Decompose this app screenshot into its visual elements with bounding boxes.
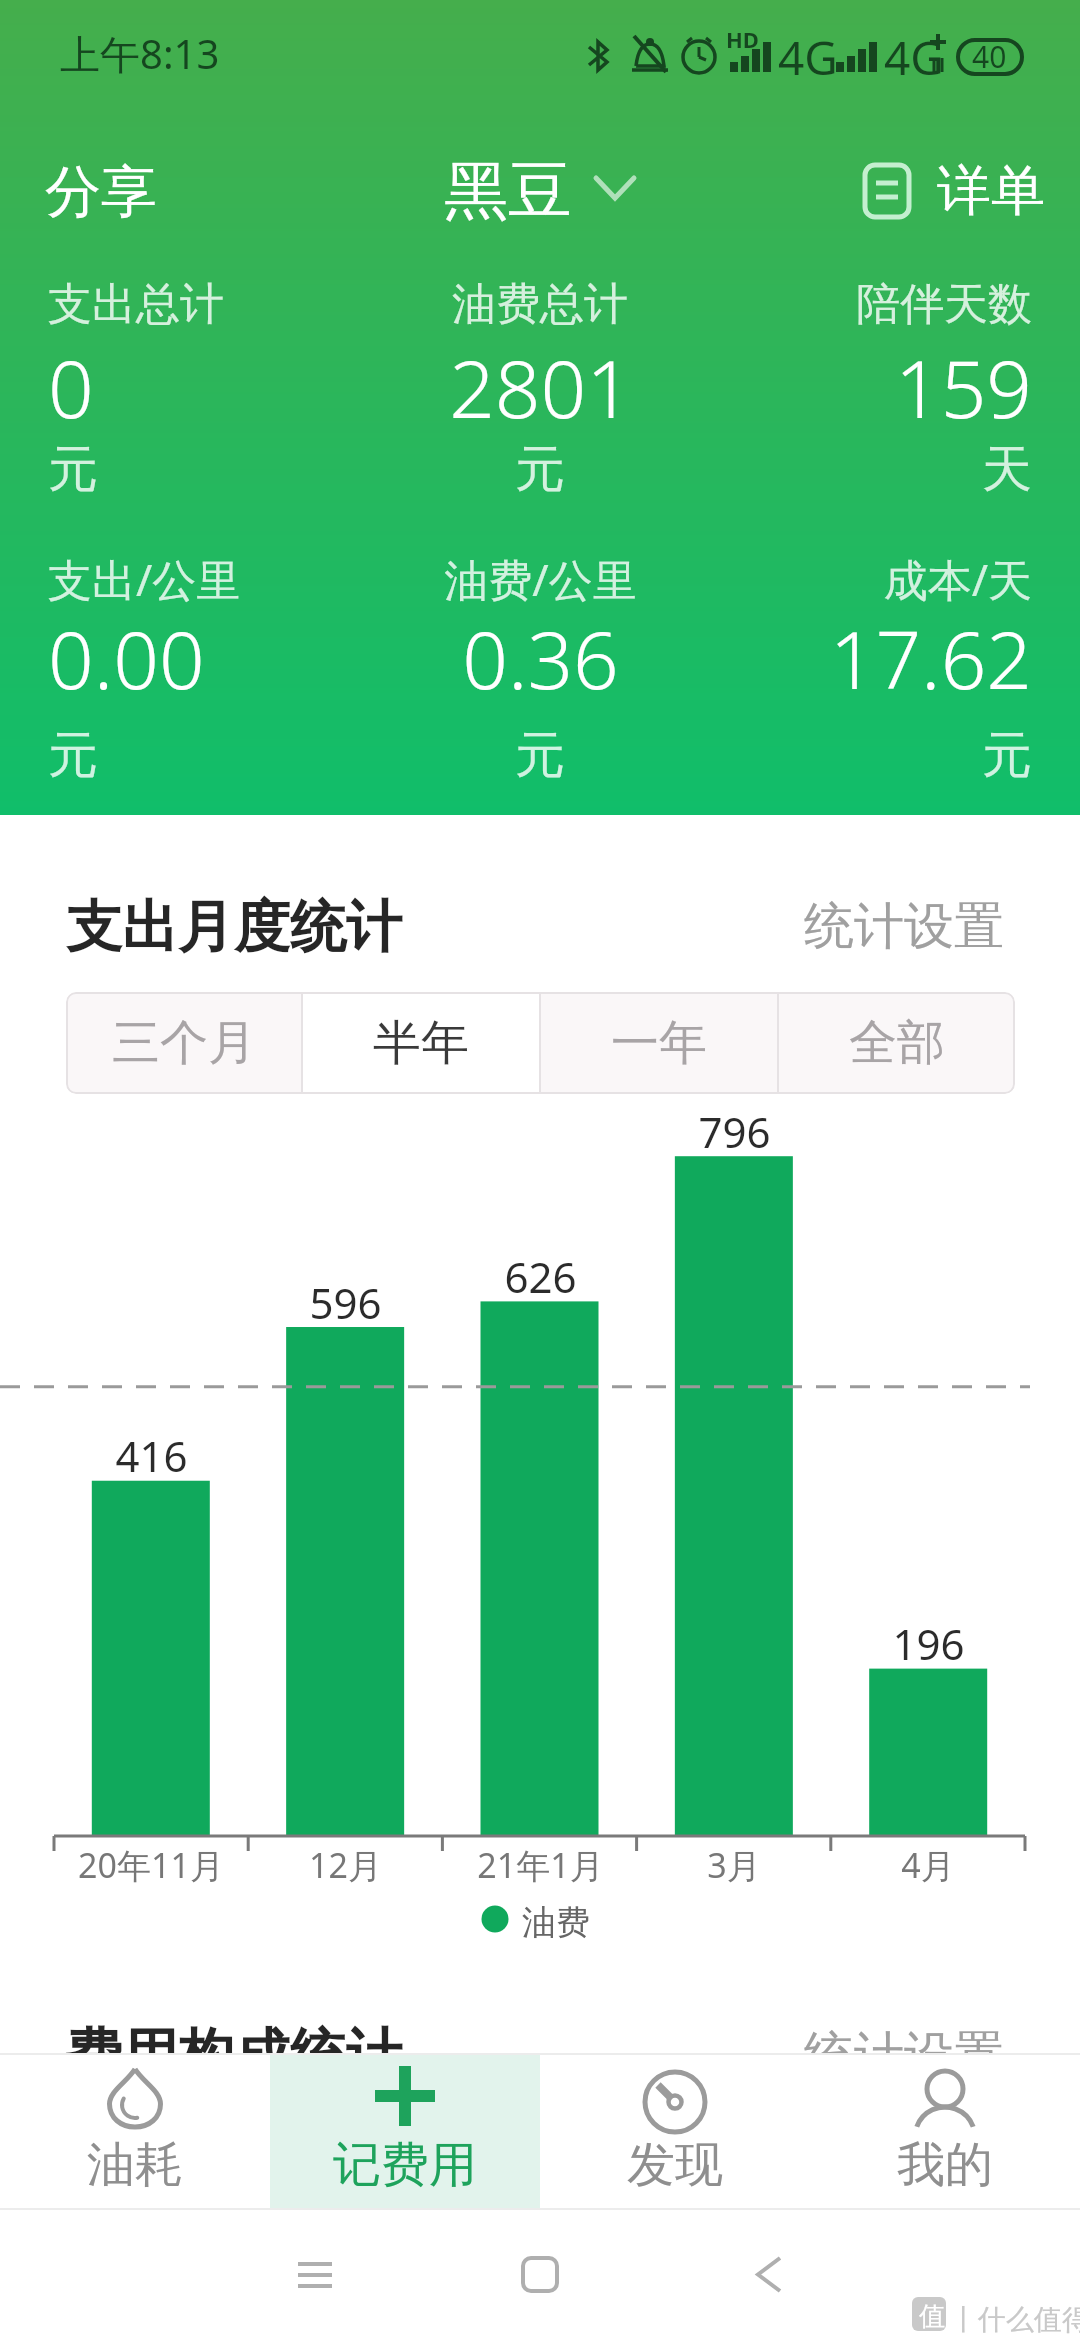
staticText: 196 (892, 1615, 965, 1672)
button[interactable]: 记费用 (270, 2053, 540, 2208)
staticText: 4G (884, 26, 944, 89)
staticText: 元 (982, 724, 1032, 787)
staticText: 油费总计 (452, 277, 628, 332)
staticText: 0 (48, 332, 94, 441)
staticText: 支出月度统计 (66, 892, 402, 963)
button[interactable]: 发现 (540, 2053, 810, 2208)
staticText: 4G (778, 26, 838, 89)
staticText: 记费用 (333, 2135, 477, 2195)
staticText: 陪伴天数 (856, 277, 1032, 332)
staticText: 天 (982, 438, 1032, 501)
staticText: 支出/公里 (48, 549, 241, 609)
staticText: 796 (698, 1103, 771, 1160)
staticText: 统计设置 (804, 895, 1004, 958)
button[interactable]: 三个月 (66, 992, 301, 1094)
staticText: 596 (309, 1274, 382, 1331)
staticText: 40 (972, 36, 1007, 77)
button[interactable]: 油耗 (0, 2053, 270, 2208)
staticText: 0.00 (48, 603, 205, 712)
staticText: 4月 (901, 1842, 955, 1888)
staticText: 上午8:13 (60, 26, 220, 81)
staticText: 12月 (309, 1842, 382, 1888)
staticText: 分享 (45, 157, 157, 228)
staticText: 油耗 (87, 2135, 183, 2195)
staticText: 统计设置 (804, 2024, 1004, 2087)
staticText: 油费/公里 (444, 549, 637, 609)
button[interactable]: 全部 (779, 992, 1015, 1094)
staticText: 值 (919, 2300, 945, 2333)
button[interactable]: 黑豆 (444, 151, 636, 232)
button[interactable]: 详单 (859, 157, 1045, 225)
staticText: HD (726, 24, 759, 54)
staticText: 0.36 (462, 603, 619, 712)
staticText: 成本/天 (883, 549, 1032, 609)
staticText: 20年11月 (78, 1842, 224, 1888)
staticText: 元 (515, 438, 565, 501)
staticText: 一年 (611, 1013, 707, 1073)
staticText: 黑豆 (444, 151, 572, 232)
staticText: 油费 (522, 1901, 590, 1944)
staticText: 费用构成统计 (66, 2020, 402, 2091)
staticText: 17.62 (829, 603, 1032, 712)
staticText: 416 (115, 1427, 188, 1484)
button[interactable]: 分享 (45, 157, 157, 228)
staticText: 元 (48, 438, 98, 501)
staticText: 我的 (897, 2135, 993, 2195)
staticText: 21年1月 (477, 1842, 604, 1888)
staticText: 626 (504, 1248, 577, 1305)
staticText: 支出总计 (48, 277, 224, 332)
staticText: 三个月 (112, 1013, 256, 1073)
staticText: 元 (48, 724, 98, 787)
staticText: 半年 (373, 1013, 469, 1073)
button[interactable]: 半年 (303, 992, 539, 1094)
staticText: 2801 (449, 332, 632, 441)
staticText: 3月 (707, 1842, 761, 1888)
staticText: 发现 (627, 2135, 723, 2195)
staticText: 丨什么值得买 (950, 2302, 1080, 2337)
button[interactable]: 一年 (541, 992, 777, 1094)
staticText: 159 (894, 332, 1032, 441)
staticText: 全部 (849, 1013, 945, 1073)
button[interactable]: 我的 (810, 2053, 1080, 2208)
staticText: 元 (515, 724, 565, 787)
staticText: 详单 (937, 157, 1045, 225)
